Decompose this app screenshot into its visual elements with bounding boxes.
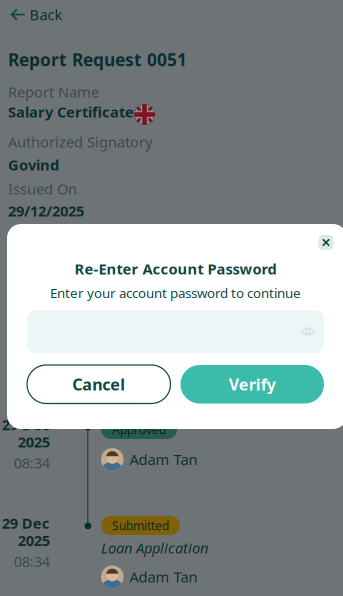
staticText: Verify [229, 374, 276, 395]
staticText: Adam Tan [130, 567, 198, 586]
button[interactable]: Back [11, 2, 63, 27]
staticText: Report Request 0051 [8, 48, 187, 71]
staticText: Authorized Signatory [8, 132, 152, 151]
staticText: 08:34 [14, 552, 50, 571]
staticText: Cancel [72, 374, 125, 395]
staticText: 2025 [18, 531, 50, 550]
staticText: 2025 [18, 432, 50, 452]
staticText: 29 Dec [2, 513, 50, 533]
staticText: 29/12/2025 [8, 201, 84, 220]
staticText: Approved [112, 421, 166, 437]
staticText: Salary Certificate [8, 102, 134, 121]
staticText: 29 Dec [2, 415, 50, 434]
staticText: Report Name [8, 82, 99, 101]
button[interactable]: Verify [180, 365, 324, 403]
staticText: Loan Application [101, 538, 208, 557]
staticText: Enter your account password to continue [50, 284, 301, 302]
staticText: Submitted [112, 517, 169, 533]
button[interactable]: Cancel [27, 365, 170, 403]
staticText: Back [30, 5, 63, 24]
staticText: Adam Tan [130, 450, 198, 469]
staticText: Issued On [8, 179, 77, 198]
staticText: 08:34 [14, 453, 50, 473]
button[interactable]: Close [318, 235, 333, 250]
staticText: Re-Enter Account Password [74, 259, 276, 278]
staticText: Govind [8, 155, 59, 174]
